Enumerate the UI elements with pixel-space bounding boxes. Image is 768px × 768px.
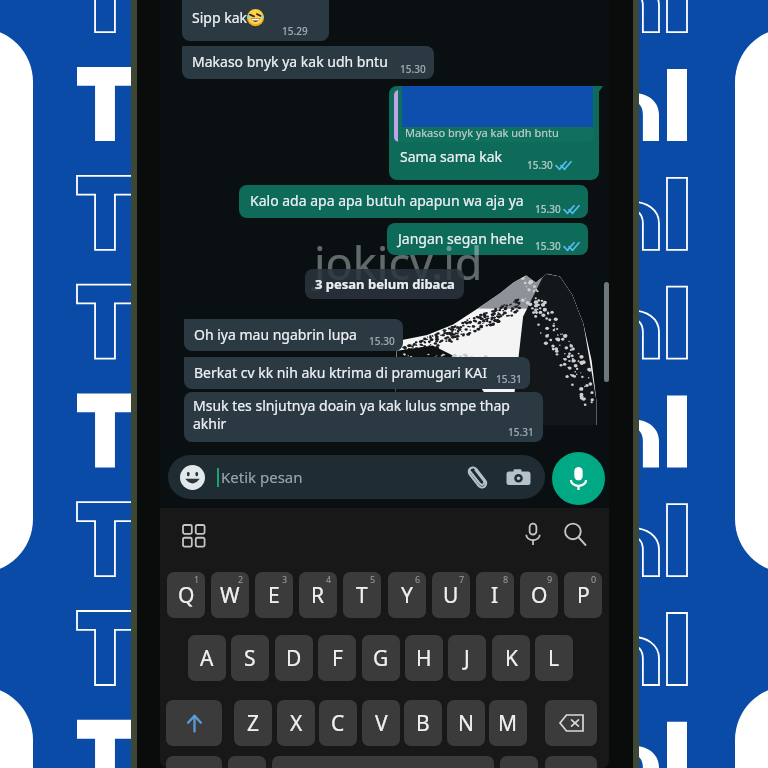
staticText: Oh iya mau ngabrin lupa: [194, 325, 357, 344]
staticText: 15.30: [369, 334, 395, 348]
staticText: 15.29: [282, 24, 308, 38]
staticText: 6: [415, 573, 421, 585]
staticText: D: [286, 644, 302, 673]
button[interactable]: W: [211, 572, 249, 618]
staticText: Y: [401, 581, 413, 610]
button[interactable]: Search: [562, 521, 588, 547]
staticText: S: [244, 644, 256, 673]
button[interactable]: [545, 756, 597, 768]
staticText: 0: [591, 573, 597, 585]
button[interactable]: X: [277, 700, 315, 746]
button[interactable]: Berkat cv kk nih aku ktrima di pramugari…: [184, 357, 530, 389]
button[interactable]: G: [362, 635, 400, 681]
staticText: 15.31: [508, 425, 534, 439]
staticText: U: [443, 581, 459, 610]
button[interactable]: C: [319, 700, 357, 746]
staticText: Sipp kak: [192, 8, 247, 27]
staticText: 4: [326, 573, 332, 585]
staticText: X: [290, 709, 303, 738]
staticText: Makaso bnyk ya kak udh bntu: [405, 125, 559, 140]
button[interactable]: Keyboard layouts: [182, 524, 204, 546]
button[interactable]: Q: [167, 572, 205, 618]
staticText: 3: [282, 573, 288, 585]
staticText: M: [498, 709, 518, 738]
button[interactable]: O: [520, 572, 558, 618]
button[interactable]: S: [231, 635, 269, 681]
staticText: jokicv.id: [314, 232, 483, 293]
button[interactable]: L: [535, 635, 573, 681]
button[interactable]: M: [489, 700, 527, 746]
button[interactable]: A: [188, 635, 226, 681]
staticText: W: [220, 581, 240, 610]
button[interactable]: H: [405, 635, 443, 681]
button[interactable]: Shift: [166, 700, 222, 746]
button[interactable]: U: [432, 572, 470, 618]
staticText: K: [505, 644, 518, 673]
button[interactable]: [500, 756, 538, 768]
staticText: B: [416, 709, 430, 738]
staticText: N: [458, 709, 474, 738]
button[interactable]: Makaso bnyk ya kak udh bntu: [182, 46, 434, 79]
staticText: F: [332, 644, 343, 673]
staticText: G: [373, 644, 389, 673]
button[interactable]: Record voice message: [552, 452, 605, 505]
button[interactable]: Msuk tes slnjutnya doain ya kak lulus sm…: [184, 392, 543, 442]
button[interactable]: Sipp kak: [182, 0, 329, 41]
staticText: 7: [459, 573, 465, 585]
button[interactable]: [228, 756, 266, 768]
staticText: I: [491, 581, 499, 610]
button[interactable]: Emoji: [168, 455, 545, 499]
other: Emoji: [180, 465, 205, 490]
button[interactable]: E: [255, 572, 293, 618]
staticText: Msuk tes slnjutnya doain ya kak lulus sm…: [193, 396, 510, 433]
staticText: 3 pesan belum dibaca: [315, 275, 455, 293]
staticText: E: [268, 581, 280, 610]
button[interactable]: F: [318, 635, 356, 681]
button[interactable]: Z: [234, 700, 272, 746]
button[interactable]: P: [564, 572, 602, 618]
button[interactable]: R: [299, 572, 337, 618]
button[interactable]: Oh iya mau ngabrin lupa: [184, 319, 403, 351]
button[interactable]: K: [492, 635, 530, 681]
button[interactable]: Backspace: [545, 700, 597, 746]
staticText: Berkat cv kk nih aku ktrima di pramugari…: [194, 363, 487, 382]
staticText: Ketik pesan: [221, 467, 303, 487]
button[interactable]: J: [448, 635, 486, 681]
button[interactable]: T: [343, 572, 381, 618]
other: Attach file: [465, 465, 490, 490]
staticText: 15.30: [535, 202, 561, 216]
staticText: C: [331, 709, 345, 738]
staticText: 15.30: [535, 239, 561, 253]
staticText: P: [577, 581, 590, 610]
staticText: L: [548, 644, 560, 673]
button[interactable]: Jangan segan hehe: [387, 223, 588, 255]
button[interactable]: N: [447, 700, 485, 746]
button[interactable]: [166, 756, 222, 768]
staticText: 15.31: [496, 372, 522, 386]
button[interactable]: I: [476, 572, 514, 618]
staticText: 9: [547, 573, 553, 585]
staticText: 2: [238, 573, 244, 585]
staticText: Makaso bnyk ya kak udh bntu: [192, 52, 388, 71]
button[interactable]: Kalo ada apa apa butuh apapun wa aja ya: [239, 185, 588, 218]
staticText: 5: [370, 573, 376, 585]
staticText: V: [375, 709, 388, 738]
button[interactable]: Voice input: [520, 521, 546, 547]
staticText: O: [531, 581, 548, 610]
staticText: Sama sama kak: [400, 147, 503, 166]
staticText: 15.30: [527, 158, 553, 172]
staticText: A: [200, 644, 214, 673]
button[interactable]: V: [362, 700, 400, 746]
staticText: Q: [178, 581, 195, 610]
button[interactable]: B: [404, 700, 442, 746]
button[interactable]: D: [275, 635, 313, 681]
staticText: T: [356, 581, 368, 610]
staticText: R: [311, 581, 325, 610]
button[interactable]: Y: [388, 572, 426, 618]
staticText: Jangan segan hehe: [398, 229, 524, 248]
staticText: Z: [247, 709, 260, 738]
staticText: H: [416, 644, 432, 673]
staticText: J: [464, 644, 470, 673]
button[interactable]: Makaso bnyk ya kak udh bntu: [389, 86, 599, 180]
